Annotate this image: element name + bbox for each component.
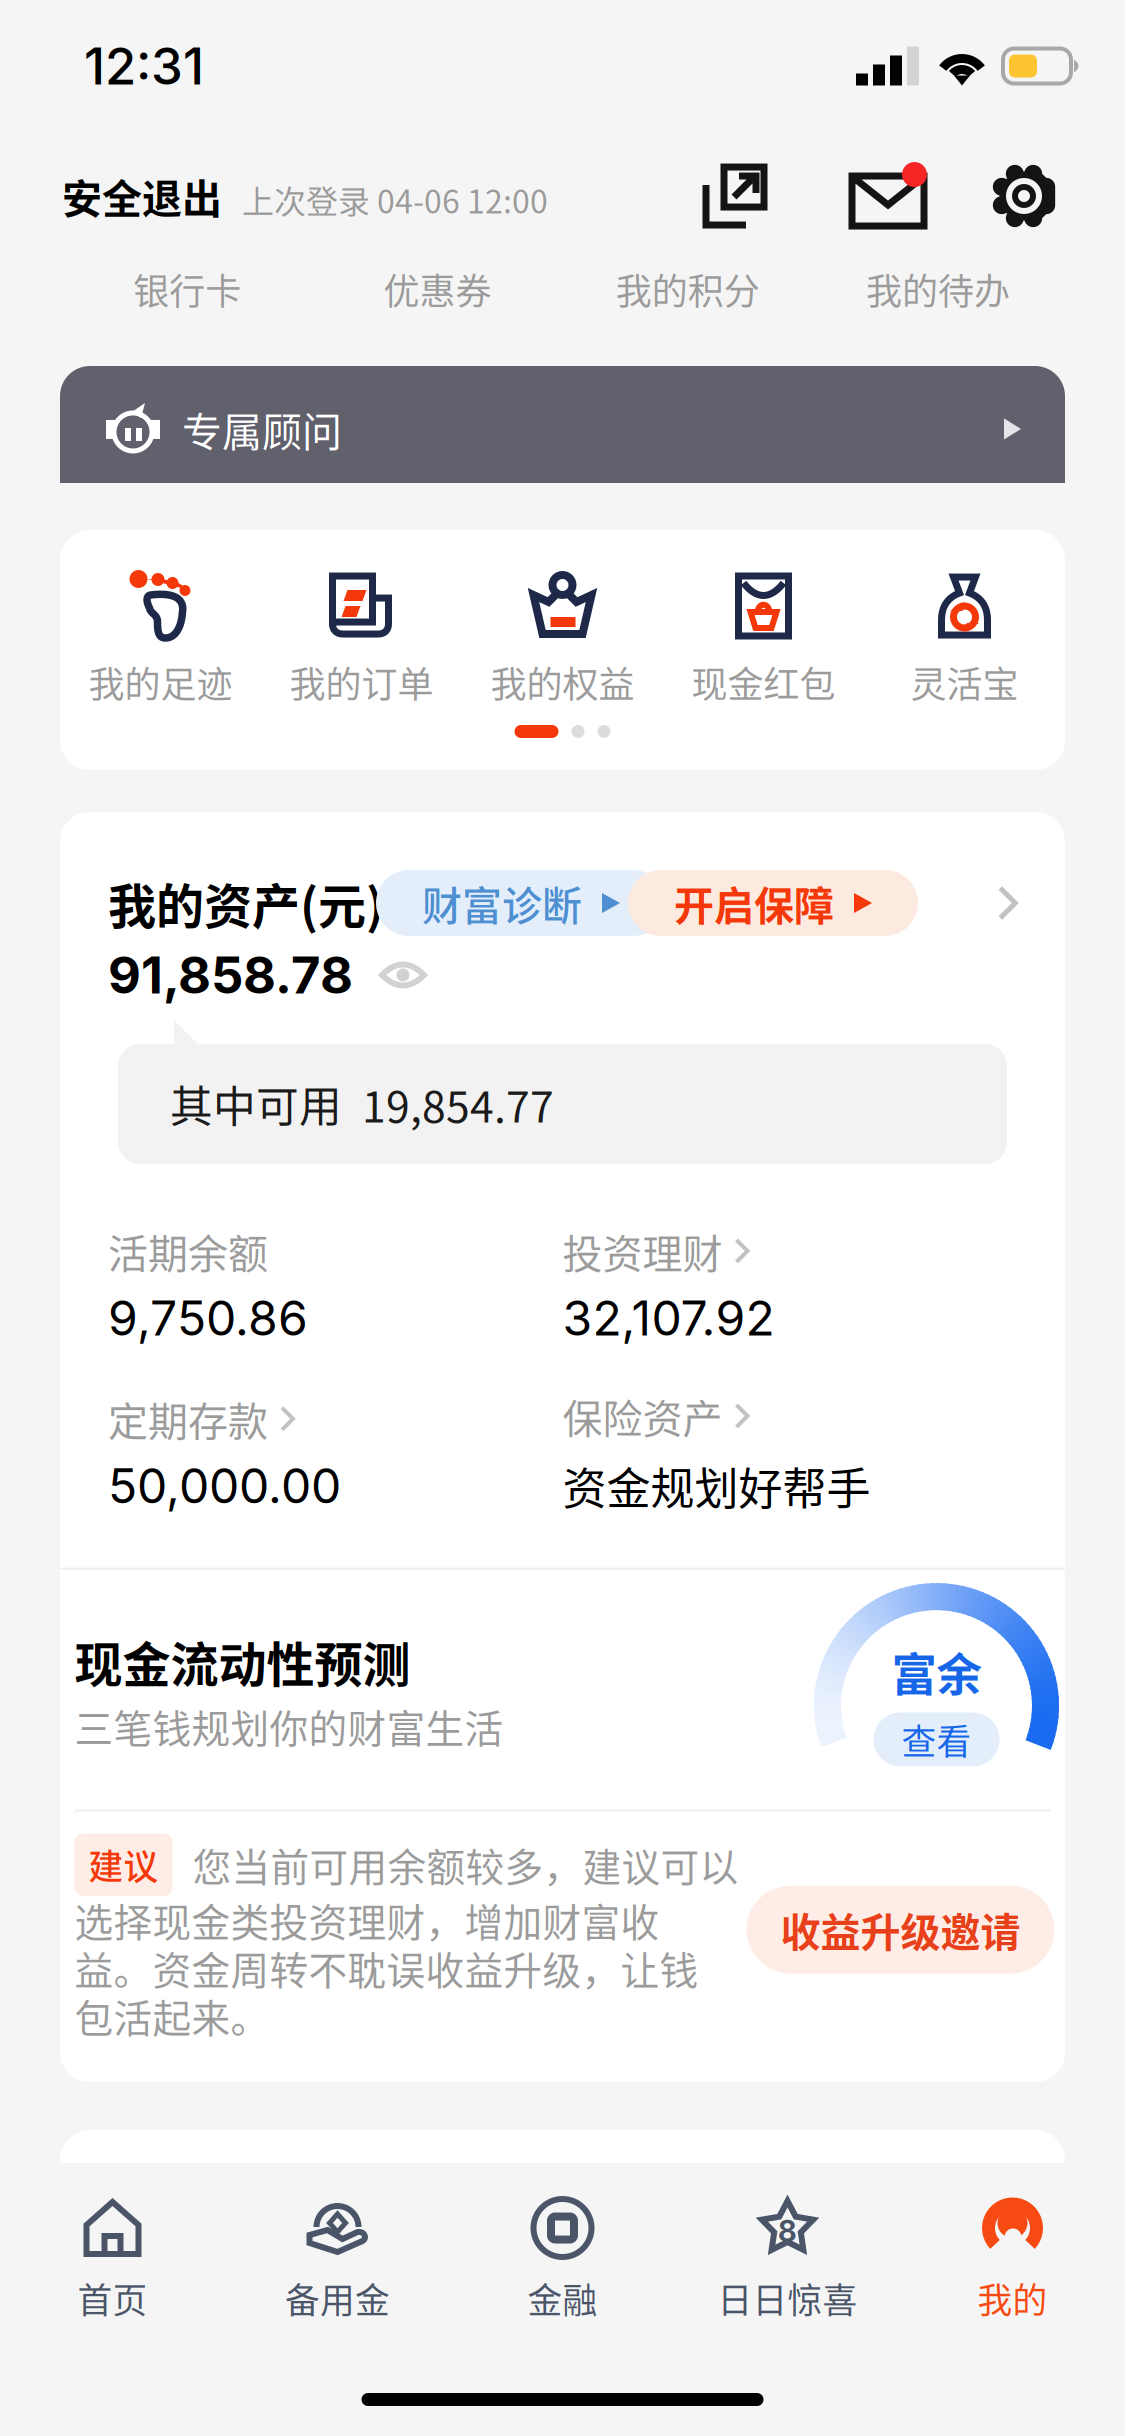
staticText: 我的足迹 <box>88 656 232 708</box>
staticText: 建议 <box>88 1840 158 1890</box>
staticText: 现金流动性预测 <box>74 1627 410 1696</box>
staticText: 我的待办 <box>866 263 1010 315</box>
staticText: 现金红包 <box>691 656 835 708</box>
button[interactable]: 首页 <box>0 2197 225 2323</box>
button[interactable]: 活期余额 <box>108 1222 562 1347</box>
staticText: 银行卡 <box>133 263 241 315</box>
button[interactable]: 优惠券 <box>312 263 562 315</box>
staticText: 8 <box>778 2213 797 2249</box>
button[interactable]: 银行卡 <box>62 263 312 315</box>
staticText: 投资理财 <box>562 1222 722 1280</box>
staticText: 我的权益 <box>490 656 634 708</box>
staticText: 安全退出 <box>62 167 222 225</box>
button[interactable]: 备用金 <box>225 2197 450 2323</box>
button[interactable]: Messages <box>847 162 929 230</box>
staticText: 91,858.78 <box>108 944 353 1006</box>
button[interactable]: 我的积分 <box>562 263 813 315</box>
button[interactable]: 8 <box>675 2197 900 2323</box>
staticText: 财富诊断 <box>422 874 582 932</box>
staticText: 上次登录 04-06 12:00 <box>242 176 548 223</box>
staticText: 资金规划好帮手 <box>562 1454 870 1518</box>
staticText: 定期存款 <box>108 1390 268 1448</box>
button[interactable]: 开启保障 <box>628 870 918 936</box>
staticText: 其中可用 19,854.77 <box>170 1073 554 1135</box>
staticText: 9,750.86 <box>108 1289 308 1347</box>
staticText: 我的订单 <box>289 656 433 708</box>
button[interactable]: 金融 <box>450 2197 675 2323</box>
staticText: 灵活宝 <box>910 656 1018 708</box>
button[interactable]: 现金红包 <box>663 570 864 708</box>
staticText: 32,107.92 <box>562 1289 774 1347</box>
staticText: 首页 <box>77 2273 147 2323</box>
button[interactable]: 投资理财 <box>562 1222 1017 1347</box>
staticText: 富余 <box>891 1639 981 1704</box>
staticText: 50,000.00 <box>108 1457 341 1515</box>
button[interactable]: 灵活宝 <box>864 570 1065 708</box>
button[interactable]: 保险资产 <box>562 1387 1017 1518</box>
staticText: 收益升级邀请 <box>780 1901 1020 1959</box>
button[interactable]: 我的足迹 <box>60 570 261 708</box>
button[interactable]: 安全退出 <box>62 167 548 225</box>
staticText: 优惠券 <box>383 263 491 315</box>
staticText: 您当前可用余额较多，建议可以 <box>192 1837 738 1893</box>
staticText: 开启保障 <box>674 874 834 932</box>
button[interactable]: 我的待办 <box>813 263 1063 315</box>
staticText: 12:31 <box>84 35 204 97</box>
staticText: 活期余额 <box>108 1222 268 1280</box>
staticText: 我的积分 <box>616 263 760 315</box>
staticText: 金融 <box>527 2273 597 2323</box>
button[interactable]: 财富诊断 <box>376 870 666 936</box>
staticText: 日日惊喜 <box>717 2273 857 2323</box>
staticText: 专属顾问 <box>182 400 342 458</box>
button[interactable]: 我的订单 <box>261 570 462 708</box>
staticText: 备用金 <box>285 2273 390 2323</box>
staticText: 我的资产(元) <box>108 868 384 938</box>
button[interactable]: 查看 <box>873 1712 999 1766</box>
button[interactable]: 我的 <box>900 2197 1125 2323</box>
staticText: 选择现金类投资理财，增加财富收 益。资金周转不耽误收益升级，让钱 包活起来。 <box>74 1892 698 2044</box>
staticText: 我的 <box>977 2273 1047 2323</box>
button[interactable]: 我的权益 <box>462 570 663 708</box>
staticText: 三笔钱规划你的财富生活 <box>74 1698 503 1754</box>
button[interactable]: 专属顾问 <box>60 366 1065 483</box>
button[interactable]: 定期存款 <box>108 1390 562 1515</box>
button[interactable]: 收益升级邀请 <box>746 1886 1054 1974</box>
button[interactable]: Settings <box>991 163 1057 229</box>
staticText: 查看 <box>901 1714 971 1765</box>
staticText: 保险资产 <box>562 1387 722 1445</box>
button[interactable]: Share <box>703 164 767 228</box>
